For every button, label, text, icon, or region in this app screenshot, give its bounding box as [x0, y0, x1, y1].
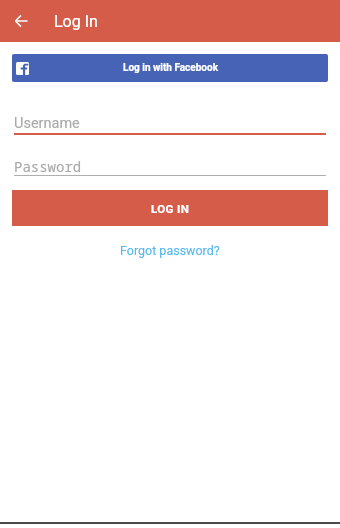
staticText: Username: [14, 115, 80, 132]
button[interactable]: [12, 106, 328, 138]
staticText: Log in with Facebook: [123, 62, 218, 74]
button[interactable]: Back: [8, 8, 34, 34]
button[interactable]: LOG IN: [12, 190, 328, 226]
staticText: Log In: [54, 12, 98, 31]
staticText: LOG IN: [151, 202, 190, 215]
button[interactable]: [12, 149, 328, 179]
staticText: Password: [14, 157, 82, 176]
button[interactable]: Forgot password?: [110, 238, 230, 263]
staticText: Forgot password?: [120, 243, 220, 258]
button[interactable]: Log in with Facebook: [12, 54, 328, 82]
